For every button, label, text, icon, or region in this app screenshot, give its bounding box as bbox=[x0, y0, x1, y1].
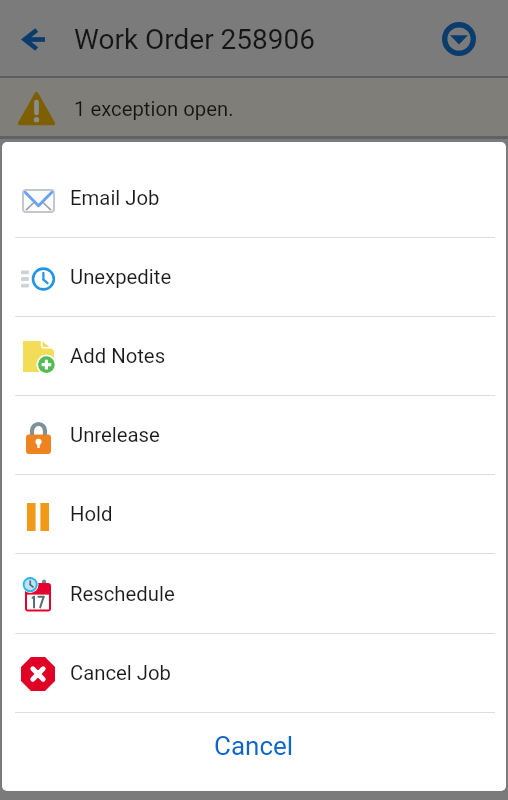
button[interactable]: Hold bbox=[2, 475, 506, 553]
staticText: Cancel Job bbox=[70, 661, 171, 685]
button[interactable]: Cancel Job bbox=[2, 634, 506, 712]
staticText: Reschedule bbox=[70, 582, 175, 606]
button[interactable]: Unexpedite bbox=[2, 238, 506, 316]
staticText: 1 exception open. bbox=[74, 97, 234, 121]
button[interactable]: Add Notes bbox=[2, 317, 506, 395]
staticText: Work Order 258906 bbox=[74, 23, 315, 56]
staticText: Hold bbox=[70, 502, 113, 526]
button[interactable]: Back bbox=[0, 0, 67, 78]
button[interactable]: Cancel bbox=[2, 713, 506, 791]
button[interactable]: Email Job bbox=[2, 158, 506, 237]
staticText: Unrelease bbox=[70, 423, 160, 447]
staticText: Email Job bbox=[70, 186, 160, 210]
button[interactable]: Unrelease bbox=[2, 396, 506, 474]
staticText: Unexpedite bbox=[70, 265, 172, 289]
staticText: Cancel bbox=[214, 731, 294, 761]
staticText: Add Notes bbox=[70, 344, 166, 368]
button[interactable]: Expand details bbox=[410, 0, 508, 78]
button[interactable]: Reschedule bbox=[2, 554, 506, 633]
